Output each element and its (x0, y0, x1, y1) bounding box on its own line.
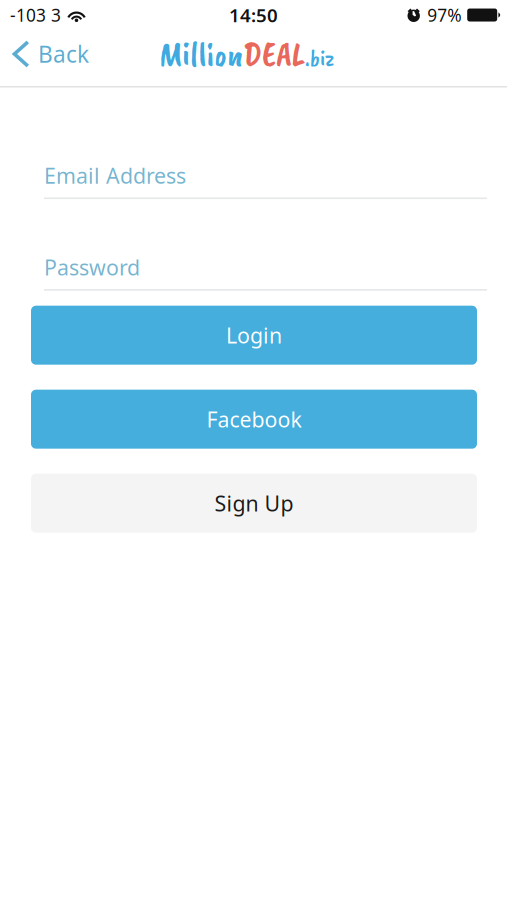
staticText: Email Address (44, 161, 186, 190)
staticText: Login (226, 321, 282, 349)
button[interactable]: Back (0, 33, 101, 83)
staticText: Password (44, 253, 140, 281)
staticText: DEAL (243, 32, 305, 76)
staticText: 14:50 (229, 3, 278, 27)
staticText: Facebook (206, 405, 301, 433)
staticText: Sign Up (214, 489, 293, 517)
staticText: 97% (427, 3, 461, 26)
staticText: -103 3 (10, 3, 61, 26)
staticText: Back (38, 39, 89, 69)
button[interactable]: Facebook (31, 390, 477, 449)
staticText: .biz (305, 44, 334, 72)
button[interactable]: Sign Up (31, 474, 477, 533)
staticText: Million (159, 32, 243, 76)
button[interactable]: Login (31, 306, 477, 365)
